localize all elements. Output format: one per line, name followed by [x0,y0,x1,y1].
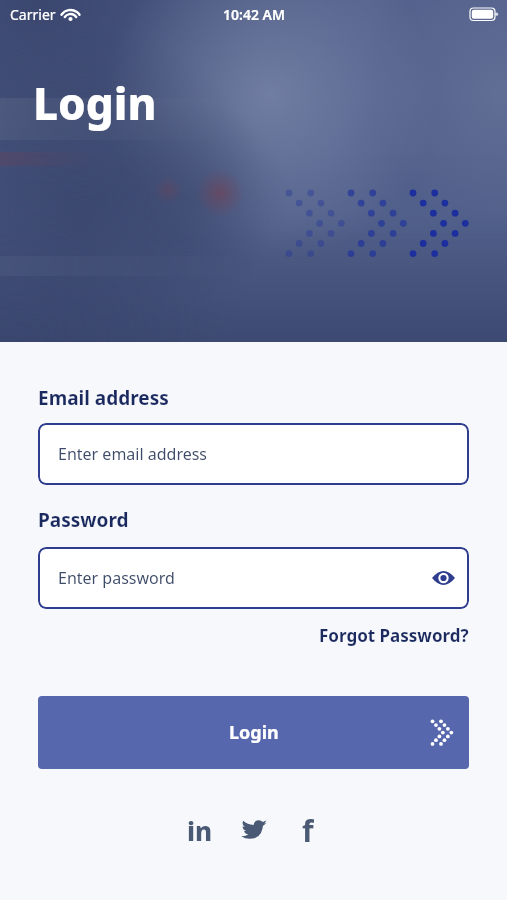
staticText: Login [229,720,279,745]
button[interactable]: Forgot Password? [319,624,469,647]
staticText: Email address [38,385,169,411]
staticText: 10:42 AM [223,5,285,24]
button[interactable]: Enter password [38,547,469,609]
button[interactable] [234,810,274,850]
button[interactable]: Enter email address [38,423,469,485]
button[interactable]: Login [38,696,469,769]
staticText: Password [38,507,129,533]
staticText: Enter email address [58,443,208,465]
button[interactable]: f [288,810,328,850]
staticText: Carrier [10,5,56,24]
staticText: f [302,810,314,850]
staticText: Login [33,73,157,133]
staticText: in [187,813,213,848]
button[interactable]: in [180,810,220,850]
staticText: Enter password [58,567,175,589]
